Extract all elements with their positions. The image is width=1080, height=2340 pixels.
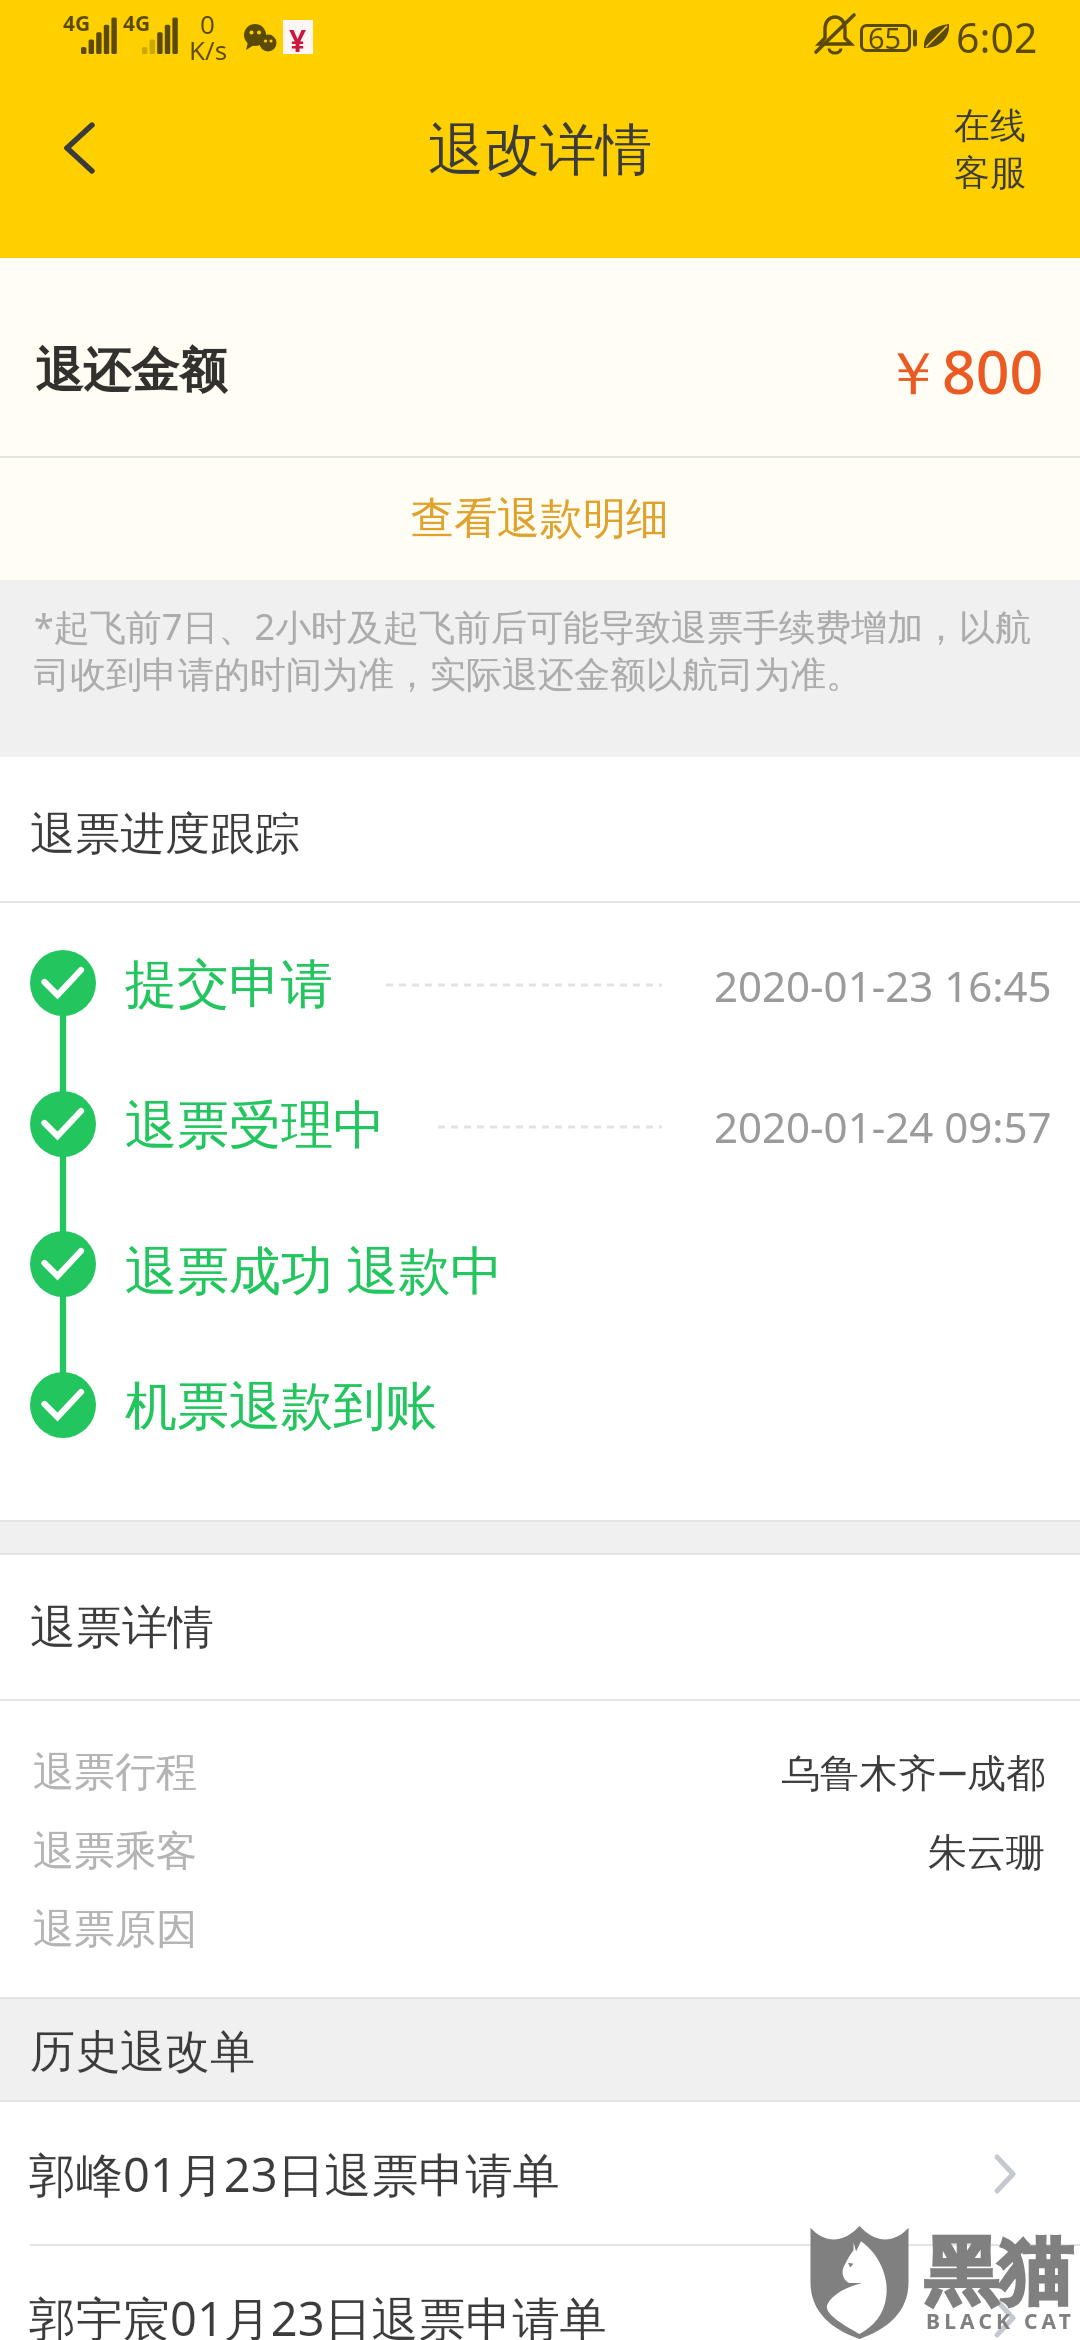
staticText: BLACK CAT: [926, 2307, 1076, 2336]
staticText: 退票成功 退款中: [125, 1233, 503, 1304]
button[interactable]: 郭宇宸01月23日退票申请单: [0, 2246, 1080, 2340]
staticText: 黑猫: [924, 2226, 1072, 2319]
staticText: ¥: [289, 20, 307, 54]
staticText: 2020-01-24 09:57: [714, 1098, 1052, 1155]
button[interactable]: 在线: [927, 85, 1053, 213]
staticText: 郭峰01月23日退票申请单: [29, 2142, 560, 2206]
staticText: 提交申请: [125, 952, 333, 1018]
staticText: 退票受理中: [125, 1093, 385, 1159]
staticText: 退票行程: [33, 1747, 197, 1799]
staticText: 4G: [63, 9, 91, 38]
staticText: ￥800: [883, 331, 1044, 412]
button[interactable]: 查看退款明细: [0, 458, 1080, 580]
staticText: K/s: [189, 32, 228, 67]
staticText: 退票乘客: [33, 1826, 197, 1878]
staticText: 0: [200, 6, 215, 41]
button[interactable]: 郭峰01月23日退票申请单: [0, 2102, 1080, 2246]
staticText: 历史退改单: [30, 2024, 255, 2081]
staticText: 4G: [123, 9, 151, 38]
staticText: 退改详情: [428, 115, 652, 186]
staticText: *起飞前7日、2小时及起飞前后可能导致退票手续费增加，以航司收到申请的时间为准，…: [34, 602, 1038, 698]
staticText: 朱云珊: [928, 1828, 1045, 1877]
staticText: 6:02: [956, 9, 1038, 65]
staticText: 退票详情: [30, 1599, 214, 1657]
staticText: 成都: [967, 1749, 1045, 1798]
staticText: 郭宇宸01月23日退票申请单: [29, 2286, 607, 2340]
staticText: 在线: [954, 103, 1026, 148]
staticText: 退票原因: [33, 1904, 197, 1956]
staticText: 查看退款明细: [411, 492, 669, 546]
staticText: 退票进度跟踪: [30, 806, 300, 863]
staticText: 乌鲁木齐: [781, 1749, 937, 1798]
staticText: 2020-01-23 16:45: [714, 957, 1052, 1014]
staticText: 退还金额: [35, 341, 227, 401]
staticText: 机票退款到账: [125, 1374, 437, 1440]
staticText: 65: [868, 18, 902, 57]
staticText: 客服: [954, 150, 1026, 195]
button[interactable]: Back: [10, 87, 130, 207]
